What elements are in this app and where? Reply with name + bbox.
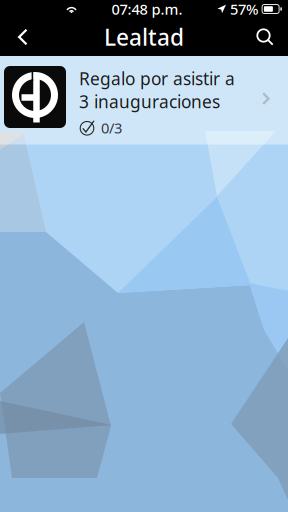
button[interactable]: Back (0, 18, 46, 56)
staticText: Lealtad (104, 22, 184, 52)
button[interactable]: Regalo por asistir a 3 inauguraciones (0, 56, 288, 144)
staticText: 07:48 p.m. (111, 0, 182, 19)
staticText: Regalo por asistir a 3 inauguraciones (79, 67, 235, 113)
button[interactable]: Search (242, 18, 288, 56)
staticText: 57% (230, 0, 258, 19)
staticText: 0/3 (101, 118, 122, 137)
